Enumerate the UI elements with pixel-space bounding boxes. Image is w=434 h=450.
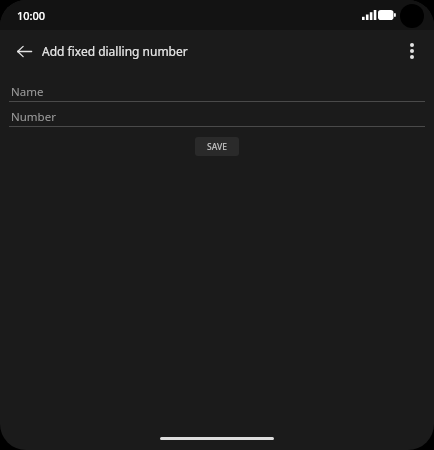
button[interactable]: More options bbox=[394, 33, 430, 69]
staticText: SAVE bbox=[207, 141, 227, 153]
button[interactable]: Name bbox=[0, 82, 434, 101]
staticText: Number bbox=[11, 109, 56, 125]
button[interactable]: Number bbox=[0, 107, 434, 126]
staticText: 10:00 bbox=[17, 8, 46, 23]
button[interactable]: SAVE bbox=[195, 137, 239, 156]
staticText: Name bbox=[11, 84, 44, 100]
staticText: Add fixed dialling number bbox=[42, 43, 188, 59]
button[interactable]: Back bbox=[6, 33, 42, 69]
